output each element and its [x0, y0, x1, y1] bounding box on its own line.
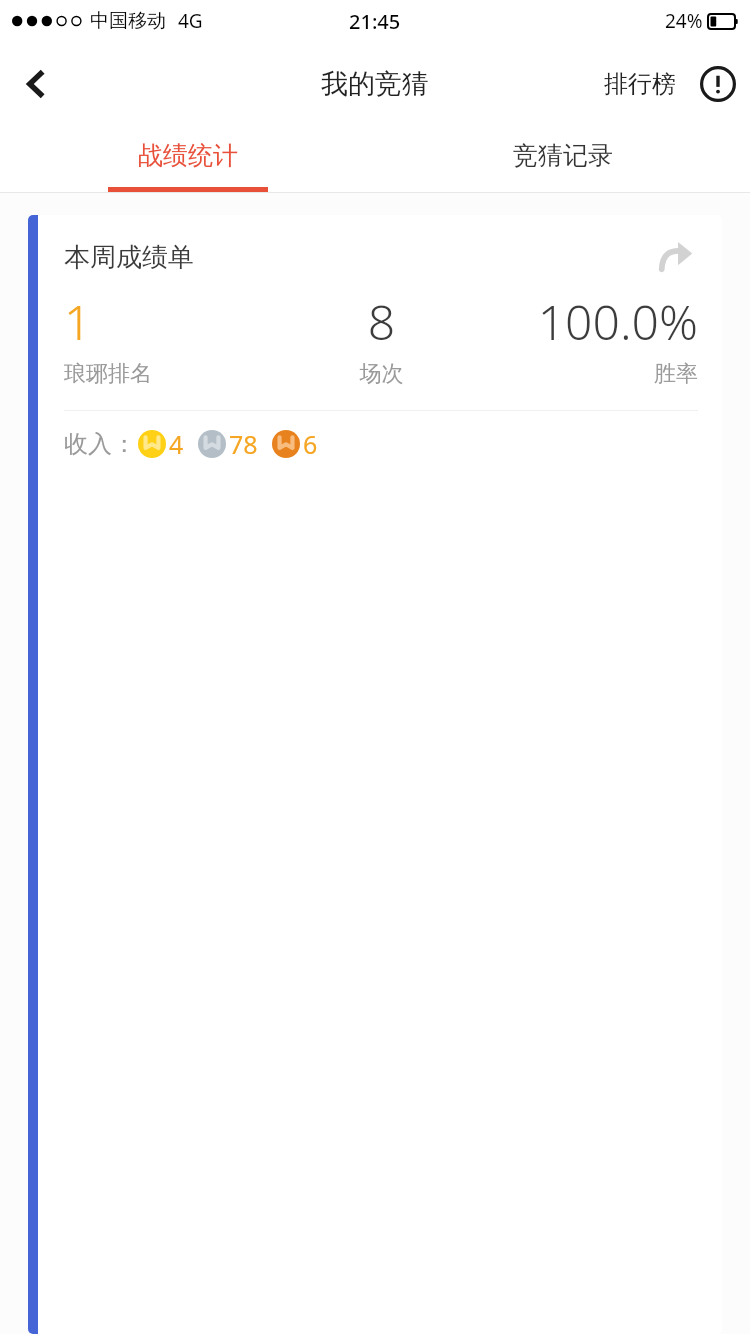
staticText: 中国移动 [90, 9, 166, 33]
staticText: 21:45 [349, 8, 401, 35]
staticText: 4G [178, 8, 203, 34]
button[interactable]: 排行榜 [594, 57, 686, 111]
staticText: 胜率 [487, 360, 698, 388]
staticText: 4 [169, 427, 184, 461]
staticText: 场次 [276, 360, 487, 388]
staticText: 1 [64, 289, 276, 354]
staticText: 100.0% [487, 289, 698, 354]
button[interactable]: 本周成绩单 [28, 215, 722, 1334]
button[interactable]: 说明 [686, 52, 750, 116]
staticText: 6 [303, 427, 318, 461]
staticText: 78 [229, 427, 258, 461]
button[interactable]: 返回 [0, 48, 72, 120]
staticText: 收入： [64, 429, 136, 459]
staticText: 竞猜记录 [513, 140, 613, 171]
staticText: 战绩统计 [138, 140, 238, 171]
button[interactable]: 分享 [654, 235, 698, 279]
button[interactable]: 竞猜记录 [375, 126, 750, 192]
staticText: 8 [276, 289, 487, 354]
staticText: 琅琊排名 [64, 360, 276, 388]
button[interactable]: 战绩统计 [0, 126, 375, 192]
staticText: 本周成绩单 [64, 241, 194, 274]
staticText: 排行榜 [604, 69, 676, 99]
staticText: 24% [665, 8, 703, 34]
staticText: 我的竞猜 [321, 67, 429, 101]
